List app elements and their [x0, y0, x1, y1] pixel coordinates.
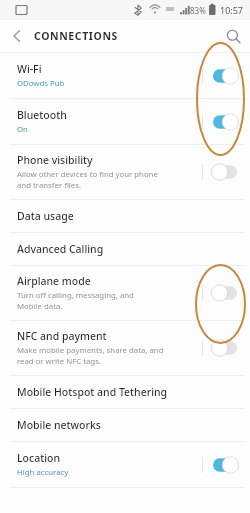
staticText: 10:57 — [220, 4, 244, 16]
staticText: CONNECTIONS — [34, 29, 118, 43]
button[interactable]: Wi-Fi — [0, 53, 250, 98]
staticText: Bluetooth — [17, 108, 67, 122]
staticText: Phone visibility — [17, 153, 93, 167]
staticText: Data usage — [17, 209, 74, 223]
button[interactable]: NFC and payment — [0, 321, 250, 375]
staticText: Airplane mode — [17, 274, 91, 288]
staticText: Advanced Calling — [17, 242, 104, 256]
staticText: High accuracy — [17, 467, 69, 478]
button[interactable]: Location toggle — [210, 456, 240, 474]
staticText: Location — [17, 451, 61, 465]
button[interactable]: Data usage — [0, 200, 250, 232]
button[interactable]: Bluetooth toggle — [210, 113, 240, 131]
button[interactable]: Airplane mode toggle — [210, 284, 240, 302]
button[interactable]: Mobile Hotspot and Tethering — [0, 376, 250, 408]
button[interactable]: Search — [216, 20, 250, 52]
button[interactable]: Back — [0, 20, 34, 52]
button[interactable]: Phone visibility toggle — [210, 163, 240, 181]
staticText: ODowds Pub — [17, 78, 65, 89]
staticText: On — [17, 124, 28, 135]
button[interactable]: Airplane mode — [0, 266, 250, 320]
staticText: Allow other devices to find your phone a… — [17, 169, 158, 191]
staticText: 83% — [190, 5, 206, 16]
staticText: Make mobile payments, share data, and re… — [17, 345, 164, 367]
staticText: Mobile networks — [17, 418, 101, 432]
button[interactable]: Phone visibility — [0, 145, 250, 199]
staticText: Wi-Fi — [17, 62, 42, 76]
button[interactable]: Bluetooth — [0, 99, 250, 144]
button[interactable]: NFC and payment toggle — [210, 339, 240, 357]
button[interactable]: Location — [0, 442, 250, 487]
button[interactable]: Mobile networks — [0, 409, 250, 441]
staticText: Mobile Hotspot and Tethering — [17, 385, 168, 399]
staticText: Turn off calling, messaging, and Mobile … — [17, 290, 134, 312]
button[interactable]: Advanced Calling — [0, 233, 250, 265]
button[interactable]: Wi-Fi toggle — [210, 67, 240, 85]
staticText: NFC and payment — [17, 329, 107, 343]
